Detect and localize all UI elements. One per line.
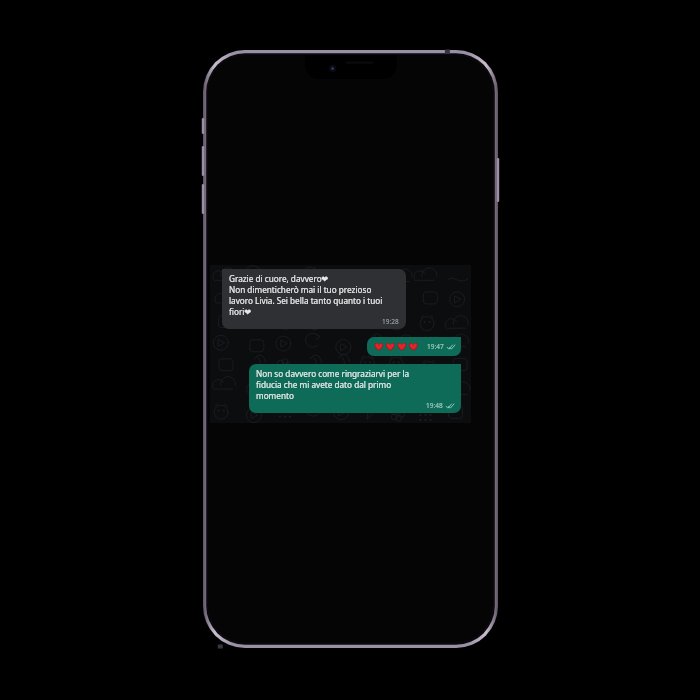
button[interactable]: Non so davvero come ringraziarvi per la … xyxy=(249,364,461,413)
staticText: 19:48 xyxy=(426,401,443,410)
staticText: Grazie di cuore, davvero❤️ Non dimentich… xyxy=(229,273,383,317)
staticText: 19:28 xyxy=(382,317,399,326)
staticText: 19:47 xyxy=(427,342,444,351)
button[interactable]: 19:47 xyxy=(367,337,461,356)
button[interactable]: Grazie di cuore, davvero❤️ Non dimentich… xyxy=(222,269,406,329)
staticText: Non so davvero come ringraziarvi per la … xyxy=(256,368,410,401)
